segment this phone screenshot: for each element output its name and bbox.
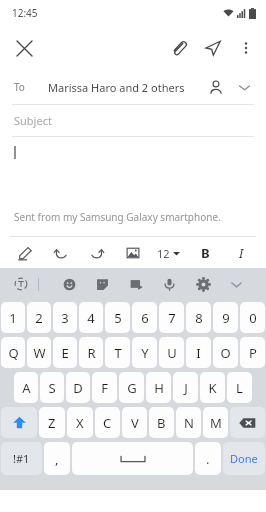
button[interactable]: N [176,407,201,438]
staticText: 9 [222,309,230,327]
staticText: E [61,344,69,362]
staticText: H [154,379,164,397]
button[interactable]: 3 [53,302,77,333]
staticText: Marissa Haro and 2 others [48,80,185,95]
button[interactable]: S [40,372,64,403]
button[interactable]: P [240,337,265,368]
staticText: !#1 [13,451,30,466]
button[interactable]: H [146,372,171,403]
staticText: 3 [61,309,69,327]
staticText: W [33,344,46,362]
button[interactable]: Emoji [57,272,81,296]
button[interactable]: Highlight [12,240,38,266]
button[interactable]: 6 [132,302,157,333]
button[interactable]: I [186,337,211,368]
button[interactable]: I [228,240,254,266]
button[interactable]: L [227,372,252,403]
staticText: N [184,414,194,432]
staticText: O [220,344,231,362]
staticText: . [206,450,210,468]
button[interactable]: Sent from my Samsung Galaxy smartphone. [0,137,266,236]
staticText: S [48,379,56,397]
button[interactable]: Shift [1,407,37,438]
staticText: L [236,379,243,397]
button[interactable]: 9 [213,302,238,333]
button[interactable]: To [0,70,266,104]
staticText: 12 [157,246,170,261]
button[interactable]: 4 [79,302,103,333]
button[interactable]: Undo [48,240,74,266]
button[interactable]: Expand recipients [230,73,258,101]
button[interactable]: Q [1,337,25,368]
staticText: 12:45 [12,6,38,20]
staticText: M [210,414,222,432]
button[interactable]: D [66,372,90,403]
button[interactable]: 0 [240,302,265,333]
button[interactable]: T [105,337,130,368]
staticText: B [201,244,210,262]
button[interactable]: 1 [1,302,25,333]
staticText: C [103,414,112,432]
button[interactable]: 12 [155,240,182,266]
button[interactable]: . [195,442,221,475]
staticText: A [22,379,31,397]
button[interactable]: Z [39,407,65,438]
button[interactable]: B [149,407,174,438]
staticText: P [249,344,257,362]
staticText: To [14,80,25,94]
button[interactable]: V [122,407,147,438]
button[interactable]: Attach [162,31,196,65]
button[interactable]: A [14,372,38,403]
button[interactable]: 5 [105,302,130,333]
staticText: 2 [35,309,43,327]
button[interactable]: B [192,240,218,266]
staticText: Z [48,414,56,432]
button[interactable]: Voice input [157,272,181,296]
button[interactable]: U [159,337,184,368]
staticText: 8 [195,309,203,327]
button[interactable]: O [213,337,238,368]
staticText: U [167,344,177,362]
button[interactable]: 8 [186,302,211,333]
button[interactable]: Stickers [90,272,114,296]
button[interactable]: 7 [159,302,184,333]
button[interactable]: !#1 [1,442,42,475]
button[interactable]: K [200,372,225,403]
button[interactable]: Subject [0,105,266,136]
button[interactable]: E [53,337,77,368]
staticText: 1 [9,309,17,327]
staticText: 6 [141,309,149,327]
button[interactable]: X [67,407,93,438]
button[interactable]: R [79,337,103,368]
staticText: J [184,379,188,397]
staticText: Sent from my Samsung Galaxy smartphone. [14,210,221,224]
staticText: I [196,344,201,362]
button[interactable]: Collapse [224,272,248,296]
staticText: 4 [87,309,95,327]
button[interactable]: W [27,337,51,368]
button[interactable]: GIF [124,272,148,296]
button[interactable]: , [44,442,70,475]
button[interactable]: Backspace [230,407,265,438]
button[interactable]: C [95,407,120,438]
button[interactable]: 2 [27,302,51,333]
button[interactable]: M [203,407,228,438]
staticText: I [239,244,244,262]
button[interactable]: Done [223,442,265,475]
staticText: F [101,379,108,397]
button[interactable]: F [92,372,117,403]
staticText: Q [8,344,19,362]
button[interactable]: Contacts [202,73,230,101]
button[interactable]: Close [8,32,40,64]
button[interactable]: G [119,372,144,403]
button[interactable]: Redo [84,240,110,266]
button[interactable]: Space [72,442,193,475]
button[interactable]: Send [196,31,230,65]
staticText: G [127,379,137,397]
button[interactable]: J [173,372,198,403]
button[interactable]: Insert image [120,240,146,266]
button[interactable]: More options [230,32,262,64]
button[interactable]: Settings [191,272,215,296]
button[interactable]: Translate [8,271,34,297]
button[interactable]: Y [132,337,157,368]
